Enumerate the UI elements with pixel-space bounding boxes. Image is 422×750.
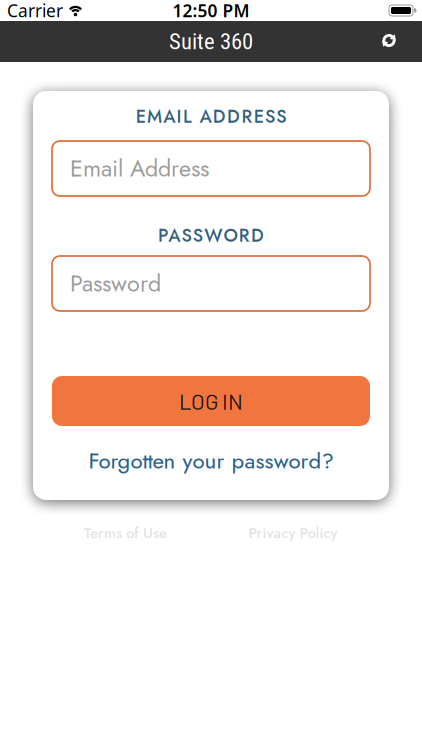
button[interactable]: Password [52, 256, 370, 311]
staticText: LOG IN [179, 388, 243, 414]
staticText: Privacy Policy [248, 522, 337, 544]
button[interactable]: LOG IN [52, 376, 370, 426]
staticText: Email Address [70, 152, 209, 185]
button[interactable]: Terms of Use [84, 522, 167, 544]
staticText: Forgotten your password? [88, 445, 333, 477]
button[interactable]: Forgotten your password? [88, 445, 333, 477]
staticText: Terms of Use [84, 522, 167, 544]
staticText: Carrier [7, 0, 63, 22]
button[interactable]: Privacy Policy [248, 522, 337, 544]
staticText: Password [70, 267, 161, 300]
staticText: Suite 360 [169, 28, 253, 55]
button[interactable]: Email Address [52, 141, 370, 196]
staticText: 12:50 PM [172, 0, 249, 22]
staticText: EMAIL ADDRESS [136, 103, 286, 129]
staticText: PASSWORD [158, 222, 264, 248]
button[interactable]: Refresh [381, 33, 422, 49]
